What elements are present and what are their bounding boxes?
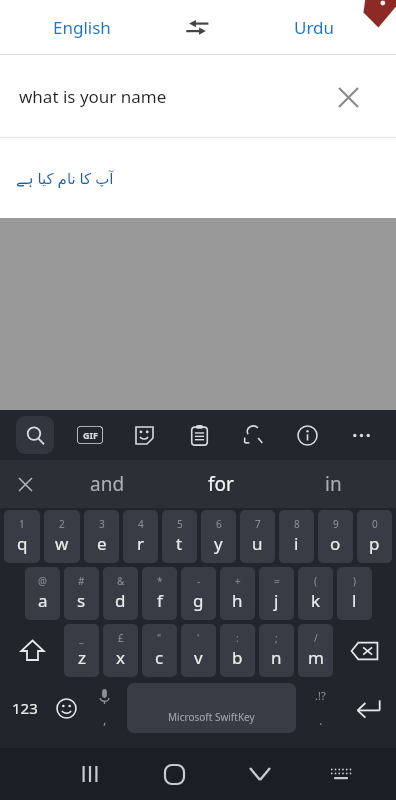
staticText: آپ کا نام کیا ہے xyxy=(16,168,114,188)
button[interactable]: in xyxy=(277,460,390,508)
button[interactable]: Switch keyboard xyxy=(302,748,379,800)
staticText: t xyxy=(176,532,183,555)
staticText: * xyxy=(157,574,163,588)
button[interactable]: " xyxy=(142,624,177,677)
button[interactable]: Home xyxy=(132,748,217,800)
button[interactable]: ) xyxy=(337,567,372,620)
button[interactable]: 2 xyxy=(44,510,80,563)
staticText: 6 xyxy=(216,517,222,531)
button[interactable]: * xyxy=(142,567,177,620)
staticText: 0 xyxy=(372,517,378,531)
button[interactable]: .!? xyxy=(299,679,341,737)
button[interactable]: : xyxy=(220,624,255,677)
staticText: 2 xyxy=(59,517,65,531)
button[interactable]: Recents xyxy=(47,748,132,800)
button[interactable]: 8 xyxy=(279,510,314,563)
staticText: s xyxy=(77,589,86,612)
staticText: 5 xyxy=(177,517,183,531)
staticText: f xyxy=(157,589,163,612)
staticText: p xyxy=(369,532,380,555)
button[interactable]: _ xyxy=(64,624,99,677)
staticText: / xyxy=(314,631,318,645)
staticText: k xyxy=(311,589,321,612)
staticText: 123 xyxy=(12,698,38,718)
button[interactable]: 123 xyxy=(2,679,47,737)
staticText: .!? xyxy=(315,688,326,703)
button[interactable]: Backspace xyxy=(335,622,394,679)
button[interactable]: Voice input xyxy=(85,679,124,737)
button[interactable]: 4 xyxy=(123,510,158,563)
button[interactable]: Swap languages xyxy=(163,0,233,55)
staticText: what is your name xyxy=(19,85,167,108)
staticText: 1 xyxy=(19,517,25,531)
staticText: in xyxy=(325,471,342,497)
staticText: u xyxy=(252,532,263,555)
staticText: , xyxy=(103,710,107,728)
button[interactable]: Urdu xyxy=(233,0,396,55)
staticText: v xyxy=(194,646,203,669)
staticText: 8 xyxy=(294,517,300,531)
button[interactable]: sticker xyxy=(117,410,172,460)
button[interactable]: trans xyxy=(226,410,280,460)
button[interactable]: 6 xyxy=(201,510,236,563)
button[interactable]: £ xyxy=(103,624,138,677)
staticText: 3 xyxy=(99,517,105,531)
button[interactable]: Clear text xyxy=(328,77,368,117)
button[interactable]: ' xyxy=(181,624,216,677)
staticText: @ xyxy=(38,574,47,588)
staticText: and xyxy=(90,471,125,497)
button[interactable]: English xyxy=(0,0,163,55)
staticText: = xyxy=(274,574,280,588)
button[interactable]: # xyxy=(64,567,99,620)
staticText: : xyxy=(236,631,239,645)
staticText: Urdu xyxy=(294,16,335,39)
button[interactable]: 1 xyxy=(4,510,40,563)
staticText: # xyxy=(78,574,85,588)
staticText: Microsoft SwiftKey xyxy=(168,710,255,724)
button[interactable]: and xyxy=(50,460,164,508)
staticText: b xyxy=(232,646,243,669)
staticText: o xyxy=(330,532,341,555)
button[interactable]: 3 xyxy=(84,510,119,563)
button[interactable]: for xyxy=(164,460,277,508)
button[interactable]: & xyxy=(103,567,138,620)
button[interactable]: = xyxy=(259,567,294,620)
staticText: English xyxy=(53,16,111,39)
staticText: . xyxy=(319,712,323,728)
button[interactable]: / xyxy=(298,624,333,677)
button[interactable]: Close suggestions xyxy=(0,460,50,508)
button[interactable]: @ xyxy=(25,567,60,620)
staticText: GIF xyxy=(83,429,98,441)
staticText: z xyxy=(78,646,86,669)
staticText: ; xyxy=(275,631,278,645)
staticText: c xyxy=(155,646,164,669)
button[interactable]: Enter xyxy=(341,679,394,737)
staticText: h xyxy=(232,589,243,612)
button[interactable]: Space xyxy=(127,683,296,733)
staticText: g xyxy=(193,589,204,612)
staticText: 4 xyxy=(138,517,144,531)
button[interactable]: 5 xyxy=(162,510,197,563)
staticText: - xyxy=(197,574,201,588)
staticText: 9 xyxy=(333,517,339,531)
button[interactable]: more xyxy=(334,410,388,460)
button[interactable]: ( xyxy=(298,567,333,620)
button[interactable]: ; xyxy=(259,624,294,677)
staticText: + xyxy=(235,574,241,588)
staticText: r xyxy=(137,532,145,555)
button[interactable]: Hide keyboard xyxy=(217,748,302,800)
button[interactable]: gif xyxy=(62,410,117,460)
staticText: ) xyxy=(353,574,356,588)
button[interactable]: Shift xyxy=(2,622,62,679)
button[interactable]: 0 xyxy=(357,510,392,563)
staticText: m xyxy=(308,646,324,669)
button[interactable]: clip xyxy=(172,410,226,460)
button[interactable]: 7 xyxy=(240,510,275,563)
button[interactable]: + xyxy=(220,567,255,620)
button[interactable]: - xyxy=(181,567,216,620)
button[interactable]: 9 xyxy=(318,510,353,563)
button[interactable]: info xyxy=(280,410,334,460)
button[interactable]: Search xyxy=(8,410,62,460)
staticText: ' xyxy=(197,631,200,645)
button[interactable]: Emoji xyxy=(47,679,85,737)
